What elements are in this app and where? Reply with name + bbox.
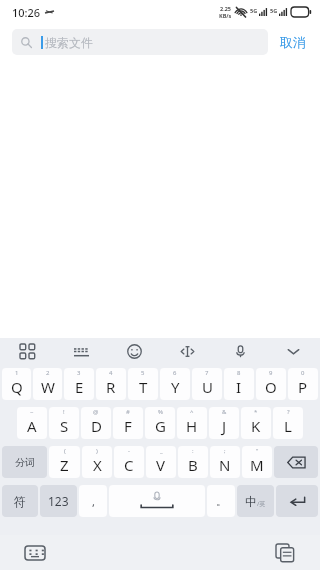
button[interactable]: 搜索文件 (12, 29, 268, 55)
button[interactable]: 8 (224, 368, 254, 400)
staticText: 7 (205, 369, 209, 377)
staticText: 符 (14, 494, 26, 509)
staticText: % (158, 408, 163, 416)
staticText: Y (171, 377, 180, 397)
button[interactable]: 分词 (2, 446, 47, 478)
staticText: ! (63, 408, 65, 416)
button[interactable]: : (178, 446, 208, 478)
button[interactable]: 3 (64, 368, 94, 400)
button[interactable]: # (113, 407, 143, 439)
button[interactable]: Backspace (274, 446, 318, 478)
staticText: L (284, 416, 292, 436)
button[interactable]: ) (82, 446, 112, 478)
button[interactable]: - (114, 446, 144, 478)
button[interactable]: Text cursor (161, 338, 214, 364)
staticText: P (298, 377, 308, 397)
button[interactable]: Keyboard layout (54, 338, 108, 364)
staticText: H (186, 416, 198, 436)
staticText: E (75, 377, 84, 397)
staticText: 4 (109, 369, 113, 377)
button[interactable]: " (242, 446, 272, 478)
staticText: 取消 (280, 34, 306, 50)
staticText: KB/s (219, 12, 232, 19)
button[interactable]: ~ (17, 407, 47, 439)
button[interactable]: 1 (2, 368, 31, 400)
button[interactable]: 2 (33, 368, 62, 400)
staticText: Z (60, 455, 69, 475)
staticText: 分词 (15, 456, 35, 469)
staticText: @ (93, 408, 99, 416)
button[interactable]: 0 (288, 368, 318, 400)
staticText: & (222, 408, 227, 416)
staticText: 0 (301, 369, 305, 377)
staticText: 8 (237, 369, 241, 377)
button[interactable]: Emoji (108, 338, 161, 364)
staticText: U (202, 377, 213, 397)
button[interactable]: 5 (128, 368, 158, 400)
staticText: " (256, 447, 259, 455)
staticText: 9 (269, 369, 273, 377)
button[interactable]: 取消 (268, 30, 308, 54)
staticText: ^ (190, 408, 194, 416)
staticText: S (60, 416, 69, 436)
staticText: A (27, 416, 37, 436)
staticText: X (93, 455, 102, 475)
staticText: ) (96, 447, 98, 455)
button[interactable]: Enter (276, 485, 318, 517)
button[interactable]: 。 (207, 485, 235, 517)
staticText: 中 (245, 494, 257, 509)
staticText: 搜索文件 (45, 35, 93, 50)
button[interactable]: , (79, 485, 107, 517)
staticText: O (265, 377, 277, 397)
button[interactable]: 123 (40, 485, 77, 517)
staticText: 3 (77, 369, 81, 377)
staticText: F (124, 416, 132, 436)
staticText: , (92, 494, 95, 509)
button[interactable]: Voice input (214, 338, 267, 364)
button[interactable]: 符 (2, 485, 38, 517)
button[interactable]: % (145, 407, 175, 439)
staticText: C (124, 455, 134, 475)
staticText: N (219, 455, 231, 475)
staticText: 5 (141, 369, 145, 377)
staticText: _ (160, 447, 163, 455)
button[interactable]: 9 (256, 368, 286, 400)
button[interactable]: ^ (177, 407, 207, 439)
button[interactable]: Recent tasks (272, 540, 298, 566)
button[interactable]: ( (49, 446, 80, 478)
button[interactable]: _ (146, 446, 176, 478)
staticText: 5G (250, 7, 258, 14)
staticText: ~ (30, 408, 34, 416)
button[interactable]: & (209, 407, 239, 439)
staticText: ? (287, 408, 290, 416)
button[interactable]: Switch keyboard (22, 540, 48, 566)
button[interactable]: * (241, 407, 271, 439)
staticText: V (156, 455, 166, 475)
staticText: I (236, 377, 242, 397)
button[interactable]: 中 (237, 485, 274, 517)
button[interactable]: ? (273, 407, 303, 439)
staticText: /英 (257, 500, 266, 508)
staticText: - (128, 447, 130, 455)
staticText: T (139, 377, 148, 397)
staticText: 1 (15, 369, 19, 377)
button[interactable]: 4 (96, 368, 126, 400)
button[interactable]: 6 (160, 368, 190, 400)
staticText: R (106, 377, 116, 397)
staticText: B (188, 455, 198, 475)
staticText: J (222, 416, 227, 436)
staticText: 。 (216, 494, 227, 508)
button[interactable]: Hide keyboard (267, 338, 320, 364)
staticText: ; (224, 447, 226, 455)
staticText: 2.25 (220, 5, 231, 12)
button[interactable]: @ (81, 407, 111, 439)
button[interactable]: Panels (0, 338, 54, 364)
staticText: Q (11, 377, 23, 397)
button[interactable]: 7 (192, 368, 222, 400)
button[interactable]: ; (210, 446, 240, 478)
staticText: * (254, 408, 258, 416)
button[interactable]: Space (109, 485, 205, 517)
button[interactable]: ! (49, 407, 79, 439)
staticText: 2 (46, 369, 50, 377)
staticText: K (251, 416, 261, 436)
